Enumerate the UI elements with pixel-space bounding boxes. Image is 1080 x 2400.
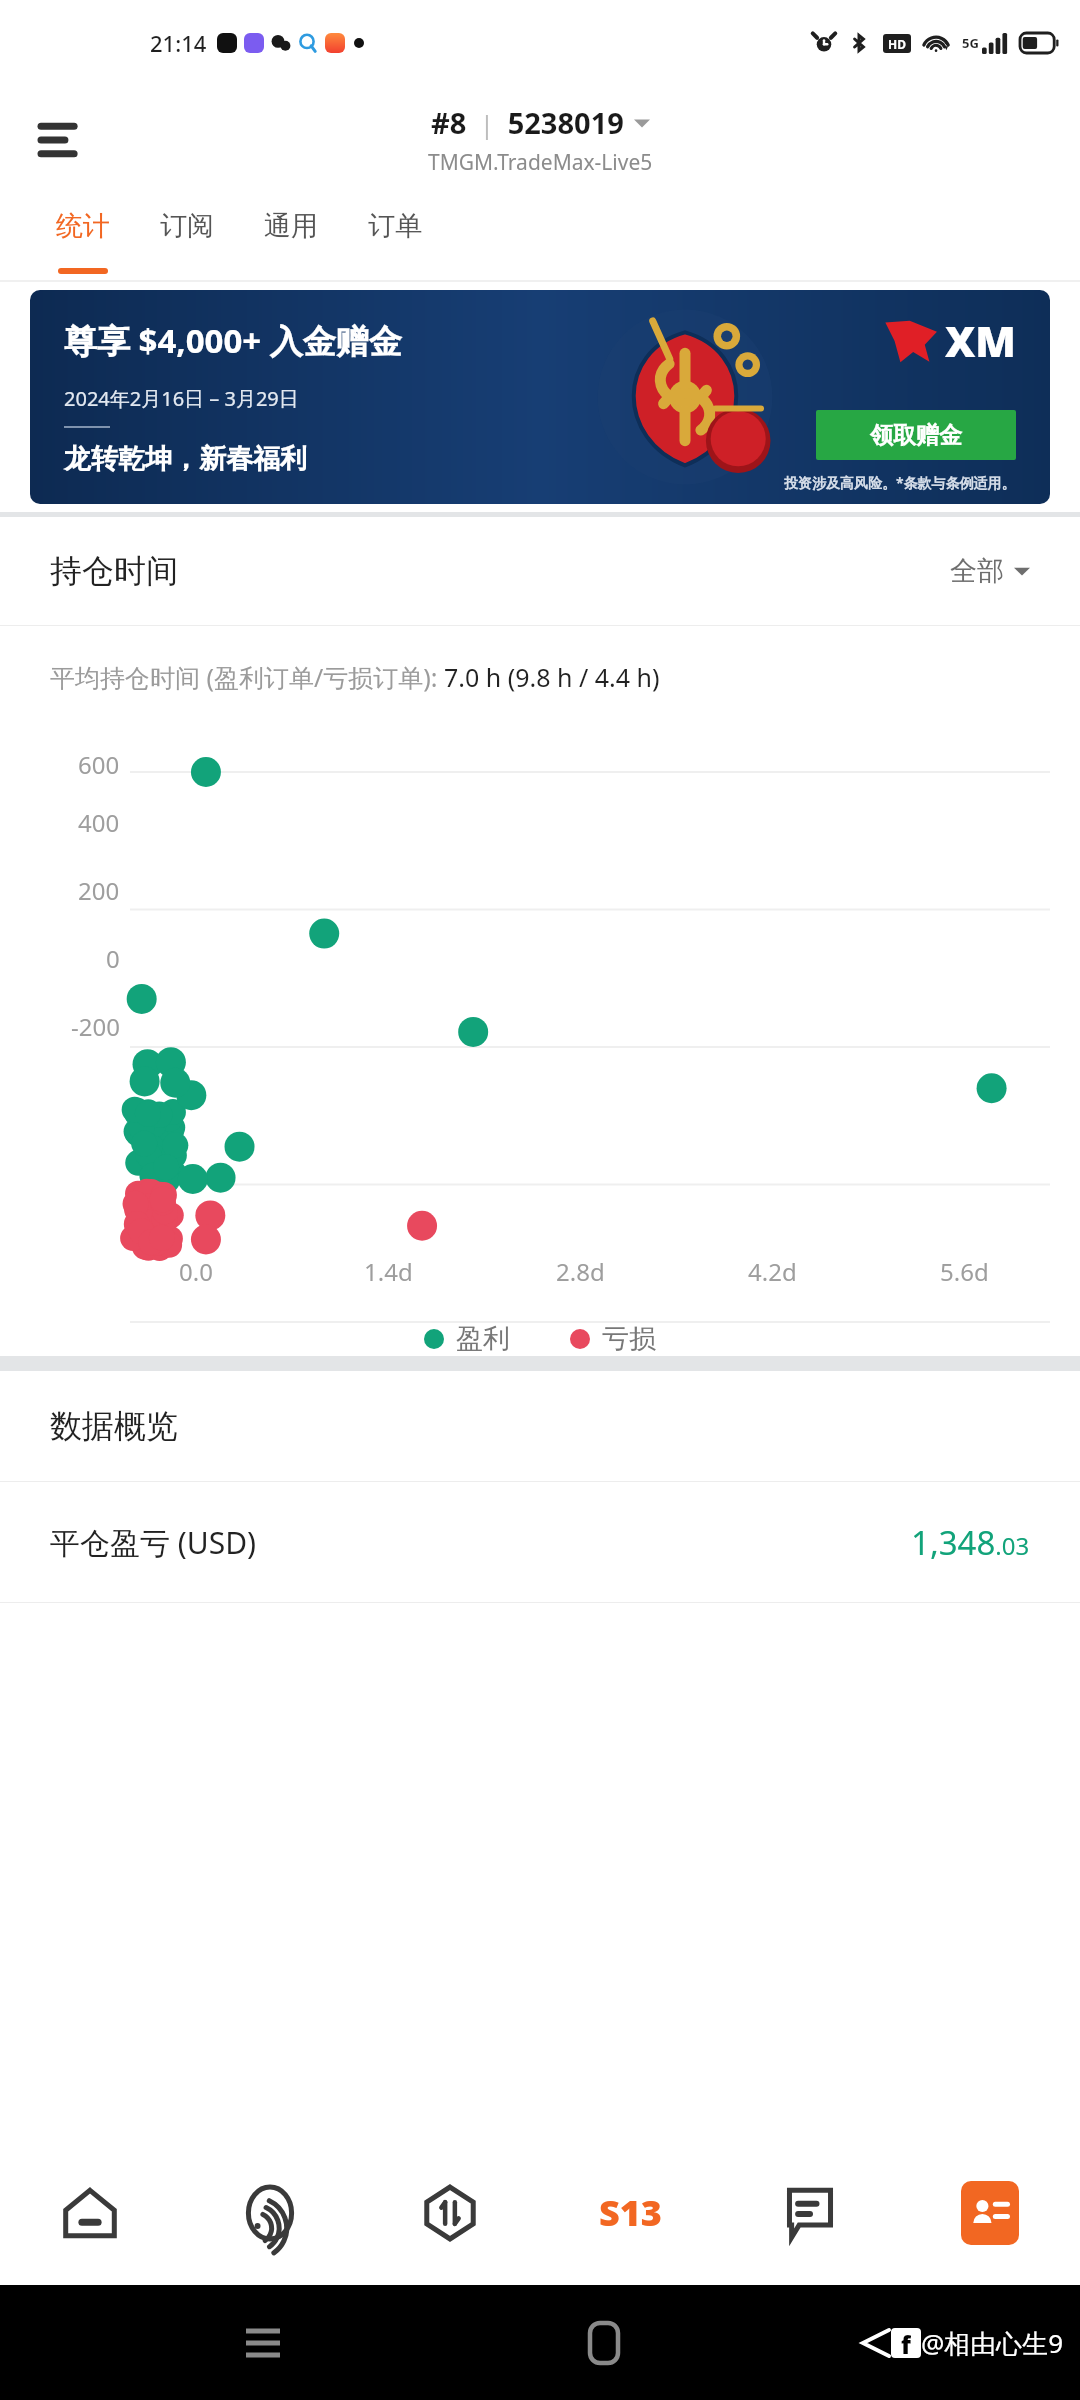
staticText: @相由心生9 <box>921 2325 1064 2361</box>
staticText: XM <box>945 312 1016 369</box>
staticText: 2024年2月16日 – 3月29日 <box>64 385 299 412</box>
staticText: 1.4d <box>364 1255 413 1288</box>
staticText: f <box>901 2328 911 2358</box>
button[interactable]: 平仓盈亏 (USD) <box>0 1482 1080 1602</box>
staticText: 5.6d <box>940 1255 989 1288</box>
button[interactable]: Home <box>0 2140 180 2285</box>
staticText: 投资涉及高风险。*条款与条例适用。 <box>784 473 1016 492</box>
button[interactable]: 通用 <box>246 195 336 282</box>
staticText: 订单 <box>368 209 422 243</box>
staticText: 全部 <box>950 554 1004 588</box>
staticText: 0.0 <box>179 1255 213 1288</box>
staticText: #8 | 5238019 <box>431 103 624 142</box>
staticText: 21:14 <box>150 28 207 58</box>
staticText: 5G <box>962 34 979 52</box>
staticText: -200 <box>71 1010 120 1043</box>
staticText: 亏损 <box>602 1322 656 1356</box>
staticText: 持仓时间 <box>50 551 178 591</box>
button[interactable]: Recents <box>226 2306 300 2380</box>
button[interactable]: Menu <box>32 108 96 172</box>
button[interactable]: Signals <box>180 2140 360 2285</box>
staticText: 龙转乾坤，新春福利 <box>64 442 307 476</box>
button[interactable]: 订阅 <box>142 195 232 282</box>
button[interactable]: #8 | 5238019 <box>428 103 653 177</box>
staticText: HD <box>888 36 906 52</box>
staticText: 通用 <box>264 209 318 243</box>
staticText: 400 <box>78 806 120 839</box>
staticText: S13 <box>599 2188 662 2237</box>
staticText: 统计 <box>56 209 110 243</box>
staticText: 盈利 <box>456 1322 510 1356</box>
staticText: 1,348.03 <box>911 1520 1030 1565</box>
button[interactable]: 统计 <box>38 195 128 282</box>
staticText: 0 <box>106 942 120 975</box>
button[interactable]: 订单 <box>350 195 440 282</box>
button[interactable]: Profile <box>900 2140 1080 2285</box>
staticText: 4.2d <box>748 1255 797 1288</box>
staticText: 平仓盈亏 (USD) <box>50 1522 257 1563</box>
staticText: 200 <box>78 874 120 907</box>
button[interactable]: Home <box>570 2303 638 2383</box>
button[interactable]: Trade <box>360 2140 540 2285</box>
button[interactable]: Messages <box>720 2140 900 2285</box>
button[interactable]: 全部 <box>950 554 1030 588</box>
staticText: 尊享 $4,000+ 入金赠金 <box>64 318 402 363</box>
staticText: 数据概览 <box>50 1406 178 1446</box>
staticText: 2.8d <box>556 1255 605 1288</box>
button[interactable]: 尊享 $4,000+ 入金赠金 <box>30 290 1050 504</box>
staticText: 平均持仓时间 (盈利订单/亏损订单): 7.0 h (9.8 h / 4.4 h… <box>50 660 660 694</box>
button[interactable]: 领取赠金 <box>816 410 1016 460</box>
staticText: TMGM.TradeMax-Live5 <box>428 148 653 177</box>
staticText: 订阅 <box>160 209 214 243</box>
staticText: 600 <box>78 748 120 781</box>
button[interactable]: S13 <box>540 2140 720 2285</box>
staticText: 领取赠金 <box>870 421 962 450</box>
